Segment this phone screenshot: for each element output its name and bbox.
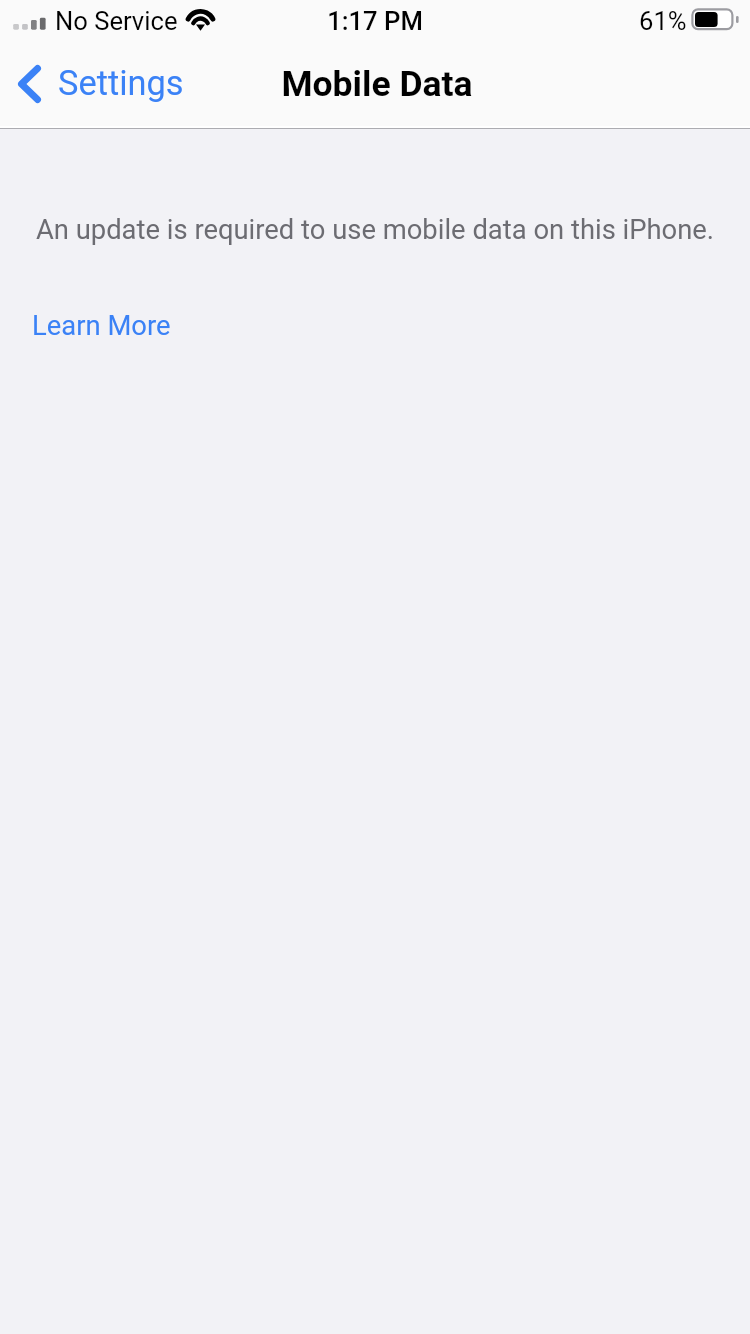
staticText: Mobile Data xyxy=(2,63,750,105)
staticText: 1:17 PM xyxy=(0,6,750,36)
staticText: An update is required to use mobile data… xyxy=(0,214,750,246)
staticText: No Service xyxy=(55,6,178,36)
staticText: Settings xyxy=(58,63,184,103)
other: Back to Settings xyxy=(18,65,41,103)
other: Wi-Fi xyxy=(183,0,219,34)
button[interactable]: Back to Settings xyxy=(0,45,200,121)
staticText: Learn More xyxy=(32,310,171,342)
other: Battery 61 percent xyxy=(690,7,740,32)
button[interactable]: Learn More xyxy=(18,301,185,351)
staticText: 61% xyxy=(639,6,687,36)
